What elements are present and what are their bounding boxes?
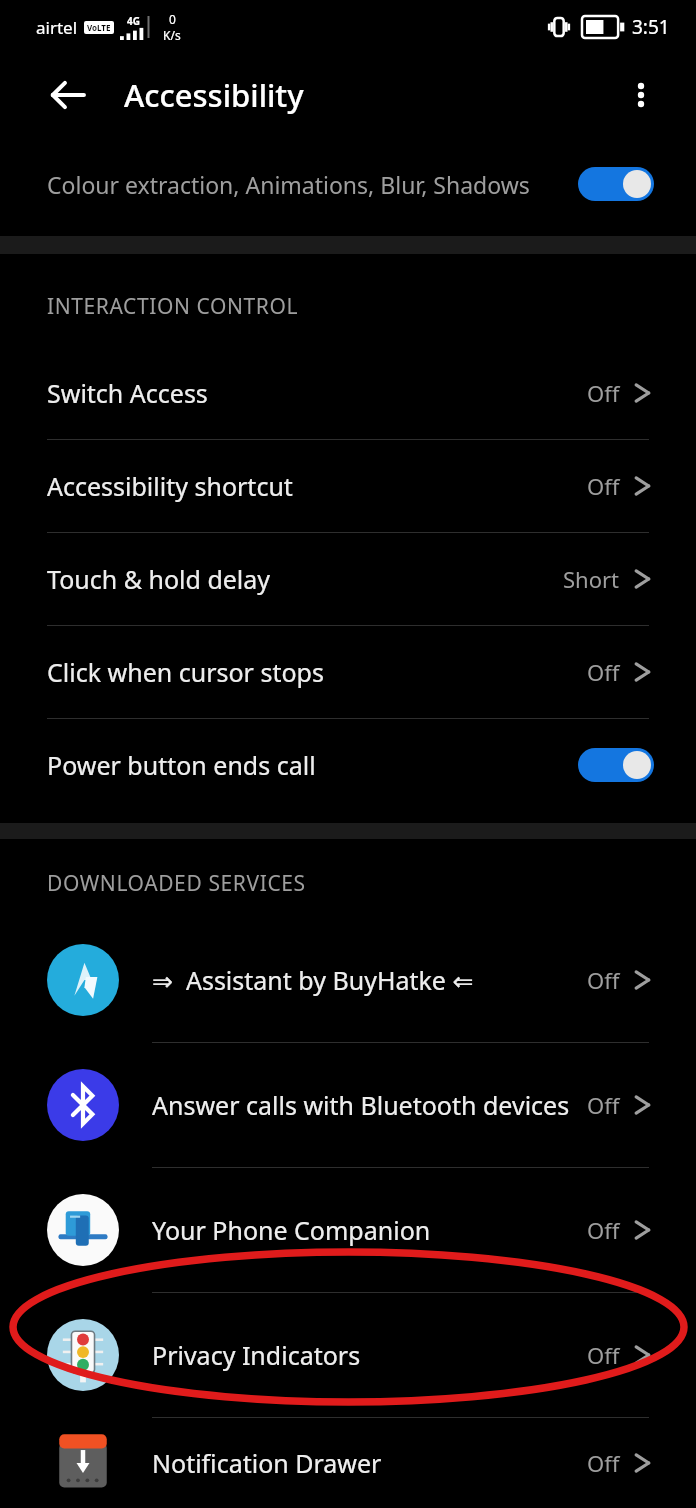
button[interactable]: Privacy Indicators bbox=[0, 1293, 696, 1417]
button[interactable]: Click when cursor stops bbox=[0, 626, 696, 718]
staticText: ⇒ Assistant by BuyHatke ⇐ bbox=[152, 963, 474, 997]
button[interactable]: Colour extraction, Animations, Blur, Sha… bbox=[0, 136, 696, 232]
staticText: Privacy Indicators bbox=[152, 1338, 361, 1372]
staticText: Off bbox=[587, 471, 620, 501]
staticText: Answer calls with Bluetooth devices bbox=[152, 1088, 570, 1122]
button[interactable]: Power button ends call bbox=[0, 719, 696, 811]
staticText: Off bbox=[587, 657, 620, 687]
staticText: Off bbox=[587, 1090, 620, 1120]
button[interactable]: More options bbox=[608, 62, 674, 128]
staticText: DOWNLOADED SERVICES bbox=[47, 869, 306, 898]
staticText: 4G bbox=[127, 14, 140, 28]
staticText: Off bbox=[587, 1340, 620, 1370]
staticText: Short bbox=[563, 564, 620, 594]
button[interactable]: Answer calls with Bluetooth devices bbox=[0, 1043, 696, 1167]
button[interactable]: Notification Drawer bbox=[0, 1418, 696, 1508]
staticText: Colour extraction, Animations, Blur, Sha… bbox=[47, 169, 530, 200]
staticText: VoLTE bbox=[87, 22, 111, 33]
staticText: Off bbox=[587, 965, 620, 995]
staticText: Power button ends call bbox=[47, 748, 578, 782]
button[interactable]: Switch Access bbox=[0, 347, 696, 439]
staticText: Your Phone Companion bbox=[152, 1213, 431, 1247]
staticText: Switch Access bbox=[47, 376, 587, 410]
button[interactable]: ⇒ Assistant by BuyHatke ⇐ bbox=[0, 918, 696, 1042]
staticText: Accessibility shortcut bbox=[47, 469, 587, 503]
staticText: Touch & hold delay bbox=[47, 562, 563, 596]
button[interactable]: Back bbox=[30, 57, 106, 133]
staticText: Click when cursor stops bbox=[47, 655, 587, 689]
button[interactable]: Accessibility shortcut bbox=[0, 440, 696, 532]
staticText: 0 bbox=[169, 11, 176, 27]
button[interactable]: Your Phone Companion bbox=[0, 1168, 696, 1292]
staticText: 3:51 bbox=[632, 14, 670, 40]
staticText: airtel bbox=[36, 16, 78, 39]
staticText: Notification Drawer bbox=[152, 1446, 382, 1480]
staticText: INTERACTION CONTROL bbox=[47, 292, 299, 321]
button[interactable]: Touch & hold delay bbox=[0, 533, 696, 625]
staticText: Off bbox=[587, 1448, 620, 1478]
staticText: K/s bbox=[163, 27, 181, 43]
staticText: Accessibility bbox=[124, 74, 304, 116]
staticText: Off bbox=[587, 1215, 620, 1245]
staticText: Off bbox=[587, 378, 620, 408]
